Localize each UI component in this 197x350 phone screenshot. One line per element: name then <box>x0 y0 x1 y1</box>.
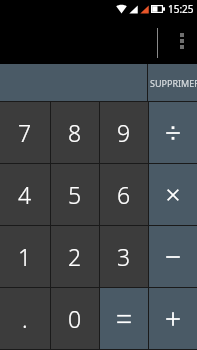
button[interactable]: Add <box>149 288 197 349</box>
button[interactable]: Divide <box>149 102 197 163</box>
button[interactable]: 7 <box>0 102 50 163</box>
staticText: 7 <box>18 117 32 148</box>
button[interactable]: 0 <box>51 288 99 349</box>
button[interactable]: 2 <box>51 226 99 287</box>
staticText: SUPPRIMER <box>150 77 197 89</box>
staticText: 1 <box>18 241 32 272</box>
button[interactable]: . <box>0 288 50 349</box>
button[interactable]: 3 <box>100 226 148 287</box>
staticText: 9 <box>117 117 131 148</box>
button[interactable]: 8 <box>51 102 99 163</box>
staticText: 15:25 <box>168 2 194 16</box>
staticText: 8 <box>68 117 82 148</box>
button[interactable]: 9 <box>100 102 148 163</box>
button[interactable]: More options <box>171 18 193 64</box>
button[interactable]: Equals <box>100 288 148 349</box>
staticText: 3 <box>117 241 131 272</box>
staticText: 5 <box>68 179 82 210</box>
button[interactable]: Subtract <box>149 226 197 287</box>
staticText: 2 <box>68 241 82 272</box>
staticText: 6 <box>117 179 131 210</box>
button[interactable]: 5 <box>51 164 99 225</box>
staticText: 0 <box>68 303 82 334</box>
button[interactable]: SUPPRIMER <box>148 64 197 101</box>
staticText: 4 <box>18 179 32 210</box>
button[interactable]: Multiply <box>149 164 197 225</box>
button[interactable]: 1 <box>0 226 50 287</box>
button[interactable]: 4 <box>0 164 50 225</box>
staticText: . <box>22 303 28 334</box>
button[interactable]: 6 <box>100 164 148 225</box>
